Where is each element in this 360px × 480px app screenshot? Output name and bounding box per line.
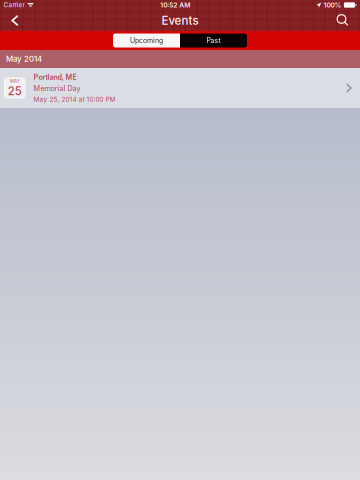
- button[interactable]: MAY: [0, 68, 360, 108]
- staticText: MAY: [10, 78, 20, 84]
- staticText: Events: [161, 14, 198, 27]
- staticText: Upcoming: [130, 36, 163, 45]
- button[interactable]: Back: [1, 10, 29, 31]
- staticText: Memorial Day: [33, 84, 80, 93]
- staticText: May 2014: [6, 54, 42, 64]
- staticText: Carrier: [3, 1, 24, 9]
- staticText: Portland, ME: [33, 73, 76, 81]
- staticText: 100%: [323, 1, 341, 9]
- staticText: Past: [206, 36, 220, 45]
- staticText: 10:52 AM: [160, 1, 190, 9]
- button[interactable]: Past: [180, 33, 247, 47]
- staticText: May 25, 2014 at 10:00 PM: [33, 95, 115, 103]
- button[interactable]: Search: [328, 10, 358, 31]
- button[interactable]: Upcoming: [113, 33, 180, 47]
- staticText: 25: [8, 84, 22, 98]
